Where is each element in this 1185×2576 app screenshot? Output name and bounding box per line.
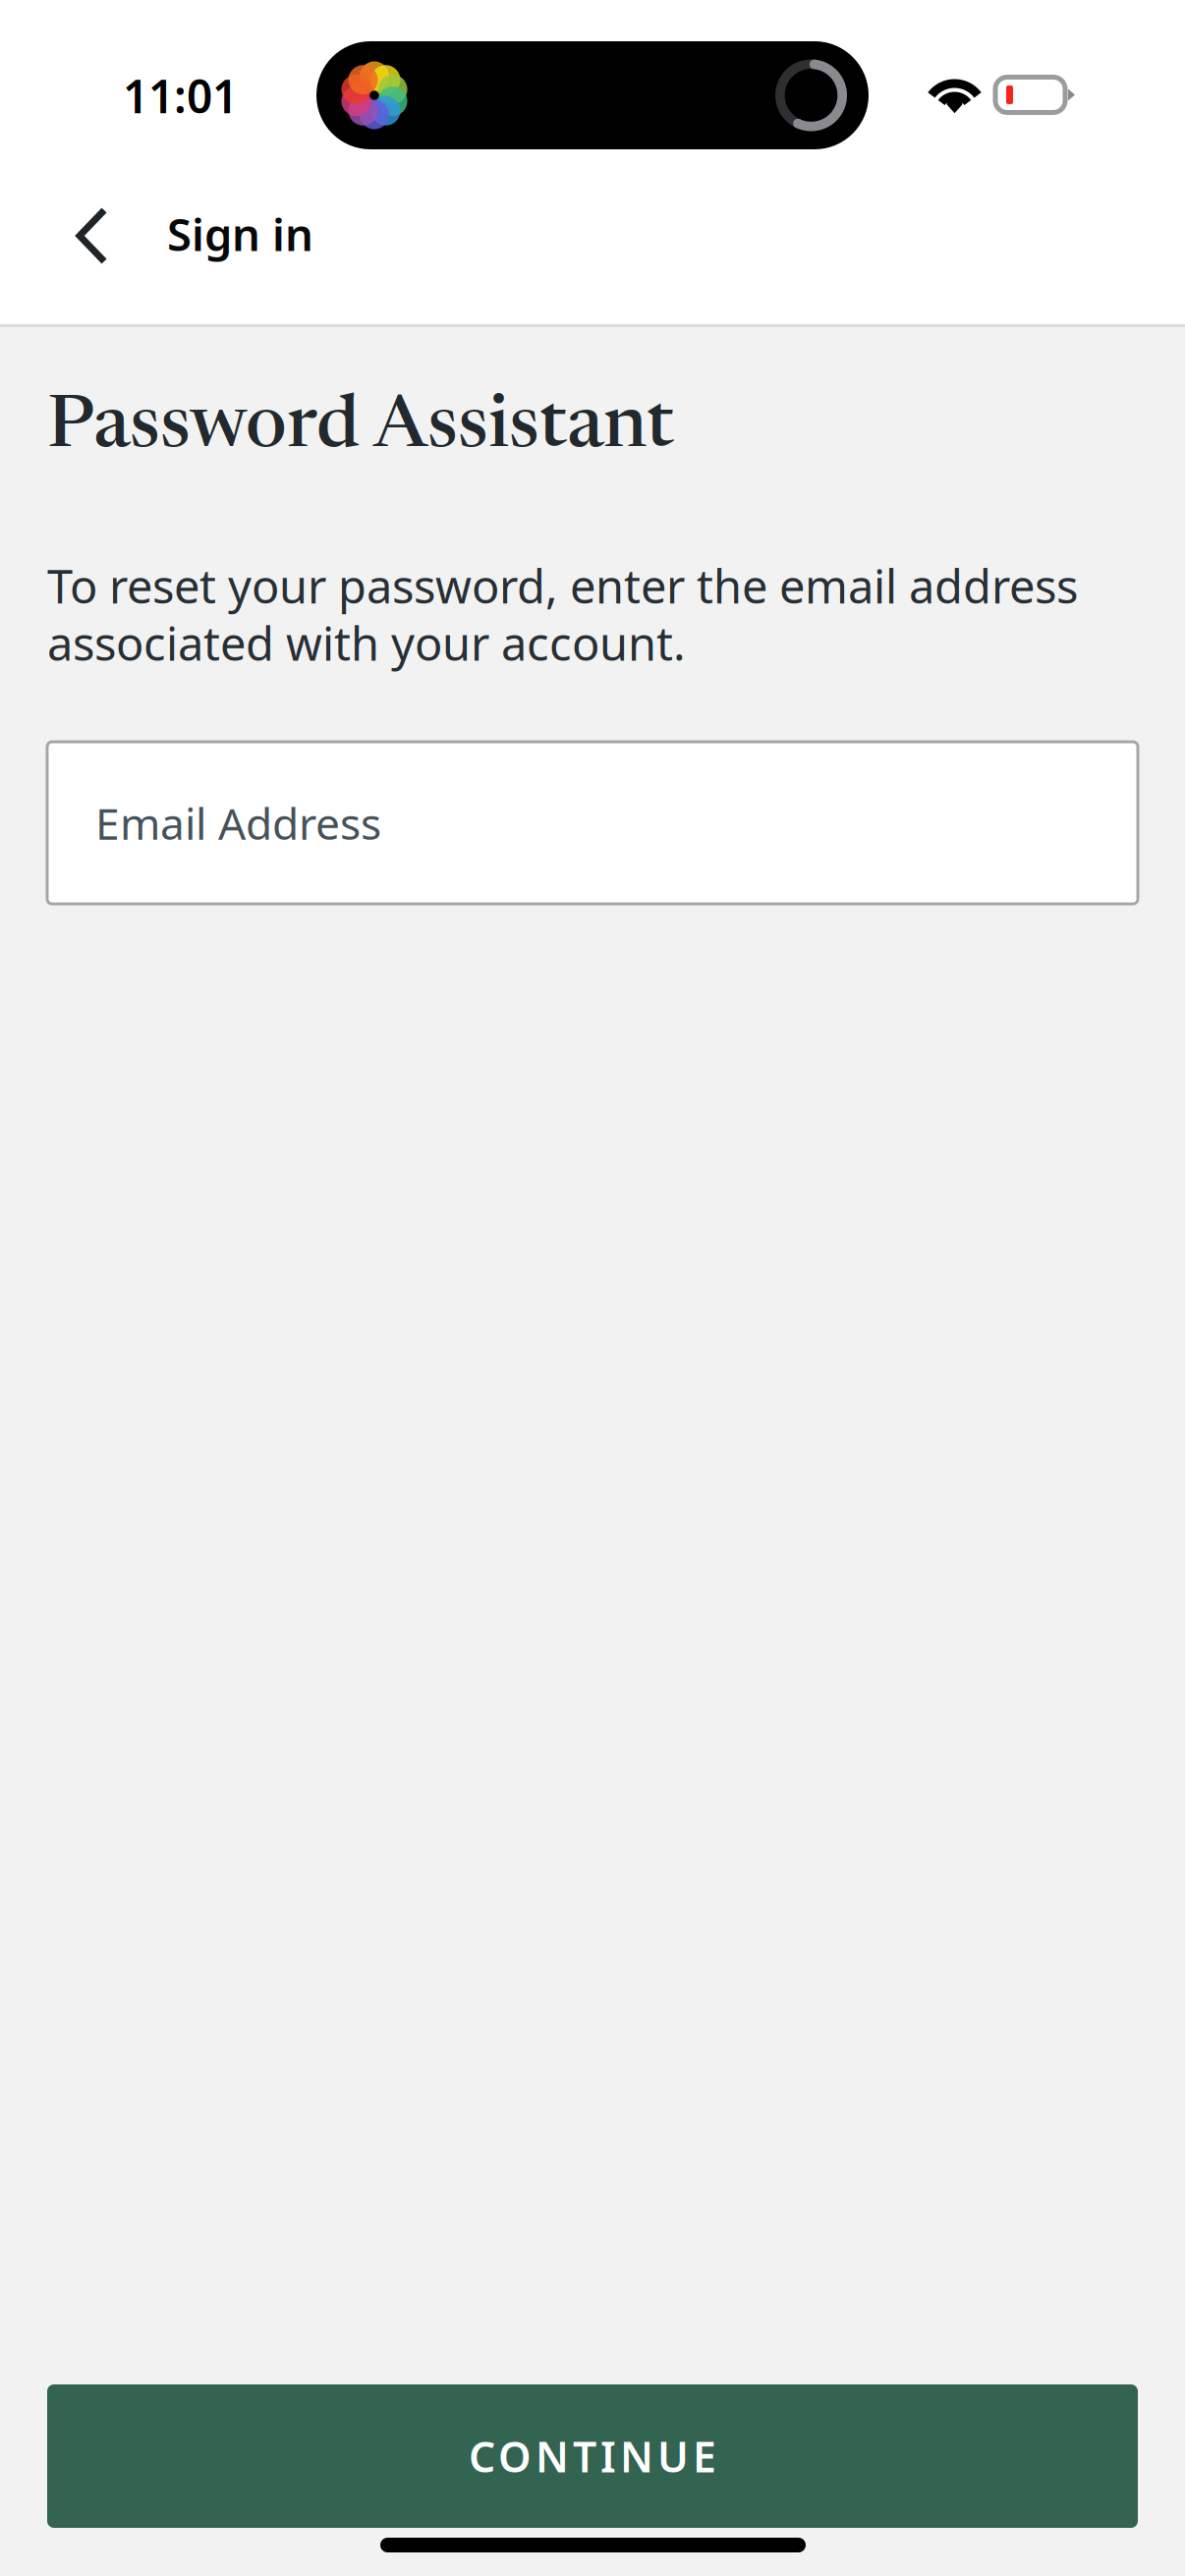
staticText: To reset your password, enter the email … xyxy=(47,557,1078,671)
staticText: Email Address xyxy=(95,793,381,852)
staticText: CONTINUE xyxy=(469,2428,716,2485)
staticText: Password Assistant xyxy=(47,392,674,465)
staticText: Sign in xyxy=(167,203,313,264)
button[interactable]: CONTINUE xyxy=(47,2384,1138,2528)
staticText: 11:01 xyxy=(123,65,238,126)
button[interactable]: Back xyxy=(35,175,148,297)
